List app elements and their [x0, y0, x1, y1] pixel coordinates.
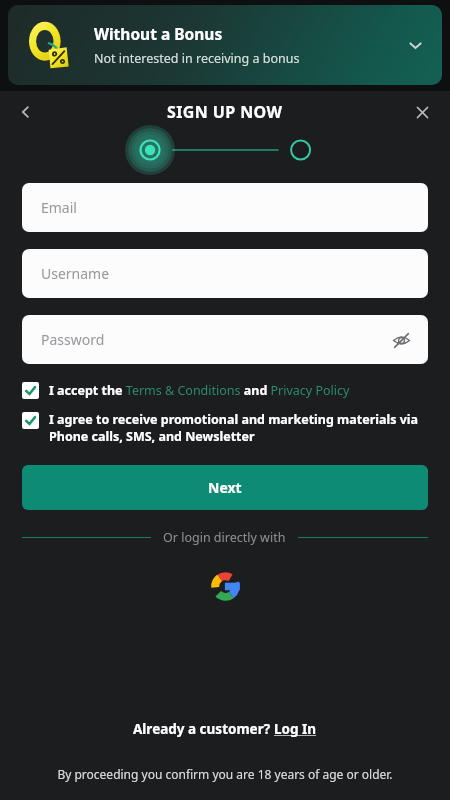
button[interactable]: Next	[22, 465, 428, 510]
staticText: Not interested in receiving a bonus	[94, 50, 300, 67]
button[interactable]: Back	[8, 94, 44, 130]
button[interactable]: Email	[22, 183, 428, 232]
button[interactable]: Password	[22, 315, 428, 364]
staticText: I accept the Terms & Conditions and Priv…	[49, 382, 350, 399]
staticText: Next	[208, 478, 242, 497]
staticText: SIGN UP NOW	[167, 101, 283, 123]
button[interactable]: I accept the Terms & Conditions and Priv…	[22, 382, 428, 399]
button[interactable]: Without a Bonus	[8, 5, 442, 85]
staticText: I agree to receive promotional and marke…	[49, 411, 428, 445]
button[interactable]: Sign in with Google	[203, 564, 247, 608]
staticText: Password	[41, 330, 105, 349]
staticText: Without a Bonus	[94, 23, 223, 44]
staticText: Log In	[274, 720, 317, 738]
staticText: Or login directly with	[163, 529, 286, 546]
button[interactable]: Show password	[386, 325, 416, 355]
staticText: Email	[41, 198, 77, 217]
button[interactable]: Already a customer?	[133, 720, 317, 738]
staticText: By proceeding you confirm you are 18 yea…	[57, 766, 393, 782]
staticText: Username	[41, 264, 110, 283]
staticText: Already a customer?	[133, 720, 274, 738]
button[interactable]: Expand	[400, 30, 430, 60]
button[interactable]: Close	[404, 94, 440, 130]
button[interactable]: Username	[22, 249, 428, 298]
button[interactable]: I agree to receive promotional and marke…	[22, 411, 428, 445]
